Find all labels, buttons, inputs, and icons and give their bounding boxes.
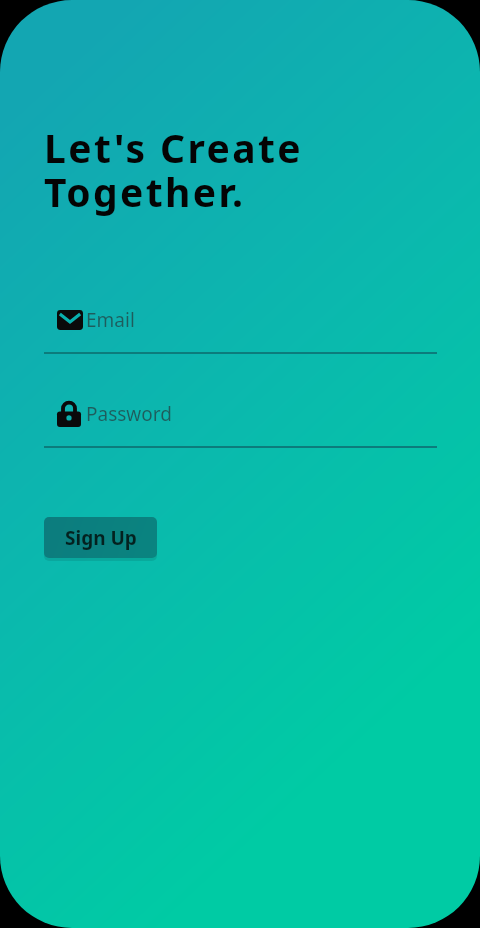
button[interactable]: Sign Up [44, 517, 157, 558]
button[interactable]: Password [44, 394, 437, 448]
staticText: Email [86, 307, 135, 333]
button[interactable]: Email [44, 300, 437, 354]
other: Email [44, 305, 86, 335]
staticText: Password [86, 401, 172, 427]
other: Password [44, 399, 86, 429]
staticText: Let's Create Together. [44, 121, 304, 219]
staticText: Sign Up [65, 525, 137, 551]
